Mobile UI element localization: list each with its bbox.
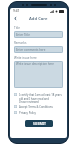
staticText: Remarks bbox=[14, 41, 27, 45]
button[interactable]: I certify that I am at least 18 years ol… bbox=[14, 93, 63, 103]
staticText: 9:41 bbox=[13, 9, 20, 13]
staticText: Enter Title bbox=[16, 33, 30, 37]
button[interactable]: Accept Terms & Conditions bbox=[14, 105, 63, 109]
staticText: Write issue here bbox=[14, 56, 37, 60]
button[interactable]: Write issue description here bbox=[14, 61, 63, 88]
staticText: I certify that I am at least 18 years ol… bbox=[19, 93, 63, 103]
staticText: Add Care bbox=[29, 16, 48, 22]
staticText: Privacy Policy bbox=[19, 111, 63, 115]
staticText: SUBMIT bbox=[33, 121, 46, 126]
staticText: Accept Terms & Conditions bbox=[19, 105, 63, 109]
button[interactable]: Privacy Policy bbox=[14, 111, 63, 115]
button[interactable]: Enter Title bbox=[14, 31, 63, 38]
staticText: Title bbox=[14, 26, 20, 30]
button[interactable]: Enter comments here bbox=[14, 46, 63, 53]
staticText: Enter comments here bbox=[16, 48, 46, 52]
staticText: Write issue description here bbox=[16, 62, 54, 66]
button[interactable]: Back bbox=[12, 15, 19, 22]
button[interactable]: SUBMIT bbox=[25, 120, 53, 127]
